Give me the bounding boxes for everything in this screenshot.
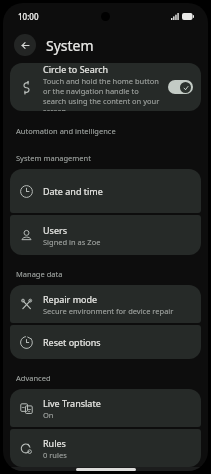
button[interactable]: Circle to Search bbox=[10, 63, 201, 111]
staticText: Signed in as Zoe bbox=[43, 237, 101, 247]
button[interactable]: Live Translate bbox=[10, 389, 201, 427]
staticText: Live Translate bbox=[43, 397, 101, 409]
button[interactable]: Rules bbox=[10, 429, 201, 467]
button[interactable]: Circle to Search toggle bbox=[168, 80, 193, 94]
button[interactable]: Back bbox=[14, 34, 36, 56]
staticText: Advanced bbox=[16, 373, 51, 383]
staticText: Touch and hold the home button or the na… bbox=[43, 76, 160, 111]
button[interactable]: Reset options bbox=[10, 325, 201, 359]
staticText: 0 rules bbox=[43, 450, 67, 460]
staticText: Users bbox=[43, 224, 67, 236]
staticText: System management bbox=[16, 153, 91, 163]
button[interactable]: Repair mode bbox=[10, 285, 201, 323]
button[interactable]: Users bbox=[10, 215, 201, 255]
staticText: Circle to Search bbox=[43, 63, 109, 75]
button[interactable]: Date and time bbox=[10, 169, 201, 213]
staticText: 10:00 bbox=[18, 11, 39, 22]
staticText: Repair mode bbox=[43, 293, 98, 305]
staticText: Secure environment for device repair bbox=[43, 306, 174, 316]
staticText: System bbox=[46, 36, 94, 55]
staticText: Manage data bbox=[16, 269, 63, 279]
staticText: Reset options bbox=[43, 336, 101, 348]
staticText: Rules bbox=[43, 437, 66, 449]
staticText: On bbox=[43, 410, 54, 420]
staticText: Automation and intelligence bbox=[16, 126, 116, 136]
staticText: Date and time bbox=[43, 185, 103, 197]
